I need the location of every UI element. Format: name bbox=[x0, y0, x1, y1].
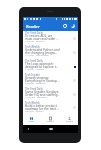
button[interactable]: Save bbox=[71, 90, 78, 99]
staticText: The Feed Daily bbox=[25, 87, 43, 91]
staticText: Tech Weekly bbox=[25, 101, 40, 105]
button[interactable]: Saved bbox=[46, 113, 55, 125]
staticText: Some Greater Sundays: Order HQ and staff… bbox=[25, 90, 60, 97]
staticText: The Feed Daily bbox=[25, 59, 43, 63]
staticText: Profile bbox=[66, 120, 73, 123]
staticText: Understand Python and the changing progr… bbox=[25, 48, 60, 55]
staticText: Growth strategy: Everything for startups… bbox=[25, 76, 60, 83]
button[interactable]: Saved bbox=[71, 62, 78, 71]
button[interactable]: The Feed Daily bbox=[23, 59, 78, 73]
staticText: Reader bbox=[26, 24, 40, 29]
button[interactable]: Feed bbox=[27, 113, 36, 125]
button[interactable]: Tech Weekly bbox=[23, 45, 78, 59]
staticText: 1:10 pm · Technology bbox=[25, 53, 49, 56]
button[interactable]: Refresh bbox=[61, 22, 69, 30]
staticText: Tech Weekly bbox=[25, 45, 40, 49]
staticText: 1:00 pm · Science bbox=[25, 67, 45, 70]
staticText: 8:45 am · Business bbox=[25, 81, 46, 84]
staticText: Tech Insider bbox=[25, 73, 40, 77]
button[interactable]: Save bbox=[71, 76, 78, 85]
staticText: The Loop approach: designed to explore t… bbox=[25, 62, 60, 69]
staticText: Feed bbox=[29, 120, 35, 123]
button[interactable]: Save bbox=[71, 103, 78, 112]
button[interactable]: Tech Insider bbox=[23, 73, 78, 87]
staticText: 9:00 am · Design bbox=[25, 109, 44, 112]
button[interactable]: Profile bbox=[65, 113, 74, 125]
staticText: Build a better product roadmap for the n… bbox=[25, 104, 60, 111]
button[interactable]: Save bbox=[71, 34, 78, 43]
staticText: Saved bbox=[47, 120, 54, 123]
staticText: 11:20 am · Business bbox=[25, 95, 48, 98]
button[interactable]: The Feed Daily bbox=[23, 31, 78, 45]
button[interactable]: Night mode bbox=[69, 22, 77, 30]
staticText: 3:15 pm · Science bbox=[25, 39, 45, 42]
button[interactable]: Save bbox=[71, 48, 78, 57]
staticText: The Feed Daily bbox=[25, 31, 43, 35]
button[interactable]: The Feed Daily bbox=[23, 87, 78, 101]
staticText: To restore AOL, we must now reconsider p… bbox=[25, 34, 60, 41]
button[interactable]: Tech Weekly bbox=[23, 101, 78, 113]
